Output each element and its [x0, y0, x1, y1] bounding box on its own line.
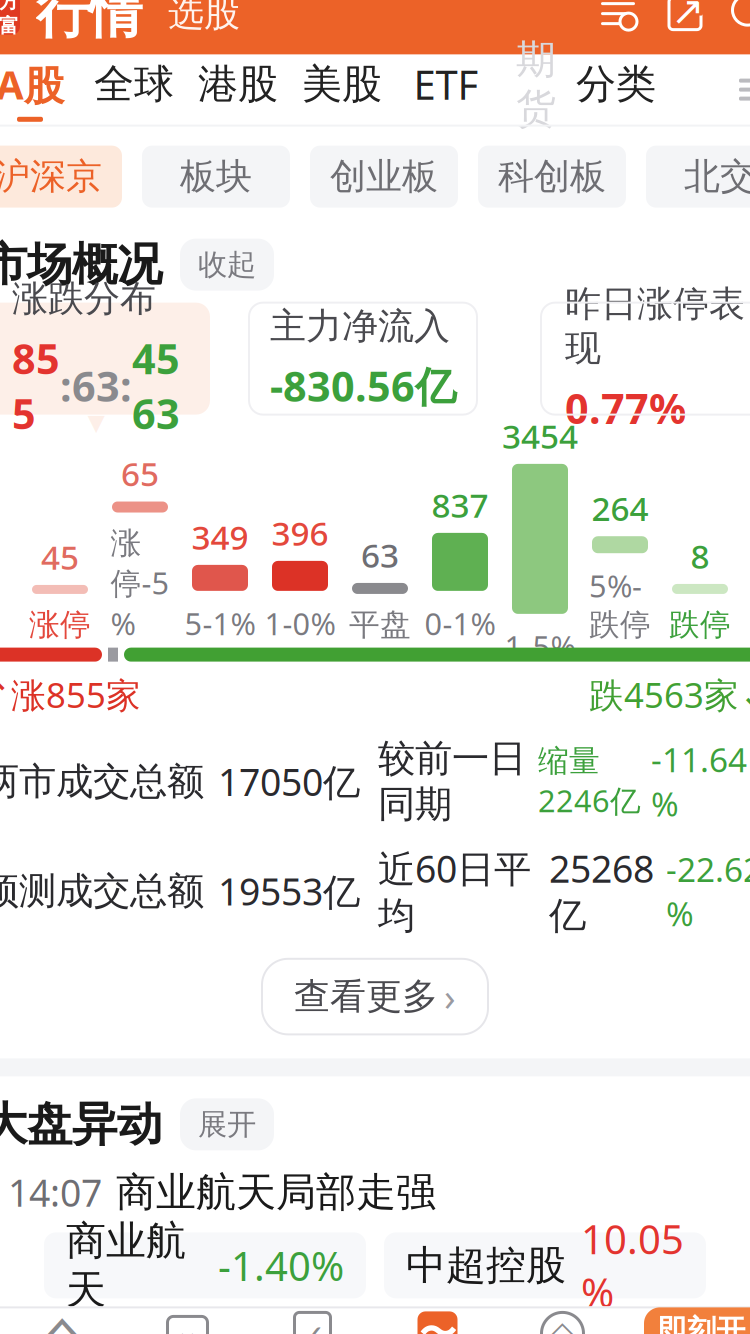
staticText: -830.56亿 [270, 358, 456, 413]
staticText: 63 [361, 533, 399, 577]
staticText: 东方 [0, 0, 19, 14]
button[interactable]: 中超控股 [384, 1232, 706, 1298]
staticText: 0.77% [565, 380, 686, 435]
staticText: 17050亿 [218, 757, 360, 806]
staticText: 大盘异动 [0, 1096, 162, 1152]
staticText: 14:07 [8, 1168, 102, 1217]
button[interactable]: 期货 [498, 55, 574, 125]
staticText: 缩量2246亿 [538, 742, 641, 821]
button[interactable]: 商业航天 [44, 1232, 366, 1298]
button[interactable]: 分类 [574, 55, 658, 125]
staticText: ◇ [549, 1314, 576, 1334]
staticText: ⌂ [43, 1299, 82, 1334]
staticText: ↗ [671, 0, 705, 33]
staticText: 19553亿 [218, 866, 360, 916]
button[interactable]: ◇ [500, 1308, 625, 1334]
button[interactable]: 搜索 [704, 0, 750, 35]
staticText: 1-5% [504, 626, 575, 667]
staticText: 展开 [198, 1106, 256, 1142]
staticText: 全球 [94, 60, 174, 109]
button[interactable]: ✓ [250, 1308, 375, 1334]
button[interactable]: ⌄ [125, 1308, 250, 1334]
staticText: 4563 [132, 331, 180, 441]
staticText: 科创板 [498, 154, 606, 199]
button[interactable]: 涨跌分布 [0, 303, 210, 429]
button[interactable]: + [625, 1308, 750, 1334]
staticText: 264 [591, 486, 648, 530]
staticText: 近60日平均 [378, 843, 531, 939]
staticText: 两市成交总额 [0, 759, 204, 804]
button[interactable]: 主力净流入 [224, 303, 502, 429]
staticText: 25268亿 [549, 843, 654, 939]
staticText: 63 [72, 358, 120, 413]
staticText: 1-0% [264, 603, 335, 644]
staticText: 45 [41, 535, 79, 579]
staticText: : [60, 358, 72, 413]
staticText: 5%-跌停 [589, 565, 651, 644]
staticText: 平盘 [349, 606, 411, 644]
button[interactable]: 沪深京 [0, 146, 122, 208]
staticText: 商业航天局部走强 [116, 1168, 436, 1217]
button[interactable]: 科创板 [478, 146, 626, 208]
staticText: 北交 [684, 154, 750, 199]
staticText: 〜 [419, 1310, 456, 1334]
staticText: 选股 [168, 0, 240, 36]
button[interactable]: 全球 [82, 55, 186, 125]
button[interactable]: 创业板 [310, 146, 458, 208]
staticText: 市场概况 [0, 237, 162, 292]
staticText: ↑ [0, 675, 11, 714]
button[interactable]: 筛选 [598, 0, 638, 32]
button[interactable]: A股 [0, 55, 82, 125]
staticText: ⌄ [174, 1312, 201, 1334]
staticText: 收起 [198, 247, 256, 283]
button[interactable]: 市场概况 [0, 227, 750, 303]
staticText: 沪深京 [0, 154, 102, 199]
staticText: 行情 [36, 0, 142, 46]
staticText: 财富 [0, 14, 19, 38]
staticText: 中超控股 [406, 1241, 566, 1290]
button[interactable]: 港股 [186, 55, 290, 125]
staticText: 创业板 [330, 154, 438, 199]
staticText: ↓ [739, 675, 750, 714]
staticText: -22.62% [666, 847, 750, 935]
button[interactable]: 分享 [638, 0, 704, 33]
button[interactable]: 板块 [142, 146, 290, 208]
staticText: 查看更多 [294, 974, 438, 1019]
staticText: A股 [0, 57, 64, 111]
button[interactable]: 〜 [375, 1308, 500, 1334]
staticText: ▾ [87, 402, 104, 441]
staticText: + [676, 1307, 699, 1334]
staticText: 分类 [576, 60, 656, 109]
staticText: 0-1% [424, 603, 495, 644]
staticText: 10.05% [581, 1212, 684, 1318]
staticText: 较前一日同期 [378, 736, 526, 827]
staticText: 涨跌分布 [12, 277, 156, 321]
staticText: 商业航天 [66, 1216, 186, 1314]
staticText: 板块 [180, 154, 252, 199]
staticText: ✓ [299, 1318, 326, 1334]
staticText: 主力净流入 [270, 304, 450, 348]
staticText: › [444, 972, 456, 1021]
staticText: 即刻开户 [658, 1312, 750, 1334]
staticText: : [120, 358, 132, 413]
staticText: ETF [413, 58, 478, 111]
button[interactable]: 查看更多 [262, 959, 488, 1034]
staticText: 8 [690, 534, 709, 578]
staticText: -11.64% [651, 737, 747, 826]
staticText: 期货 [516, 35, 556, 133]
staticText: 预测成交总额 [0, 868, 204, 914]
button[interactable]: 14:07 [0, 1162, 750, 1222]
button[interactable]: ⌂ [0, 1308, 125, 1334]
button[interactable]: 昨日涨停表现 [516, 303, 750, 429]
staticText: 837 [431, 483, 488, 527]
button[interactable]: ETF [394, 55, 498, 125]
button[interactable]: 北交 [646, 146, 750, 208]
staticText: -1.40% [218, 1239, 344, 1292]
staticText: 855 [12, 331, 60, 441]
button[interactable]: 全部分类 [728, 55, 750, 125]
button[interactable]: 美股 [290, 55, 394, 125]
staticText: 美股 [302, 60, 382, 109]
button[interactable]: 大盘异动 [0, 1086, 750, 1162]
button[interactable]: 选股 [142, 0, 240, 42]
staticText: 涨855家 [11, 672, 141, 718]
